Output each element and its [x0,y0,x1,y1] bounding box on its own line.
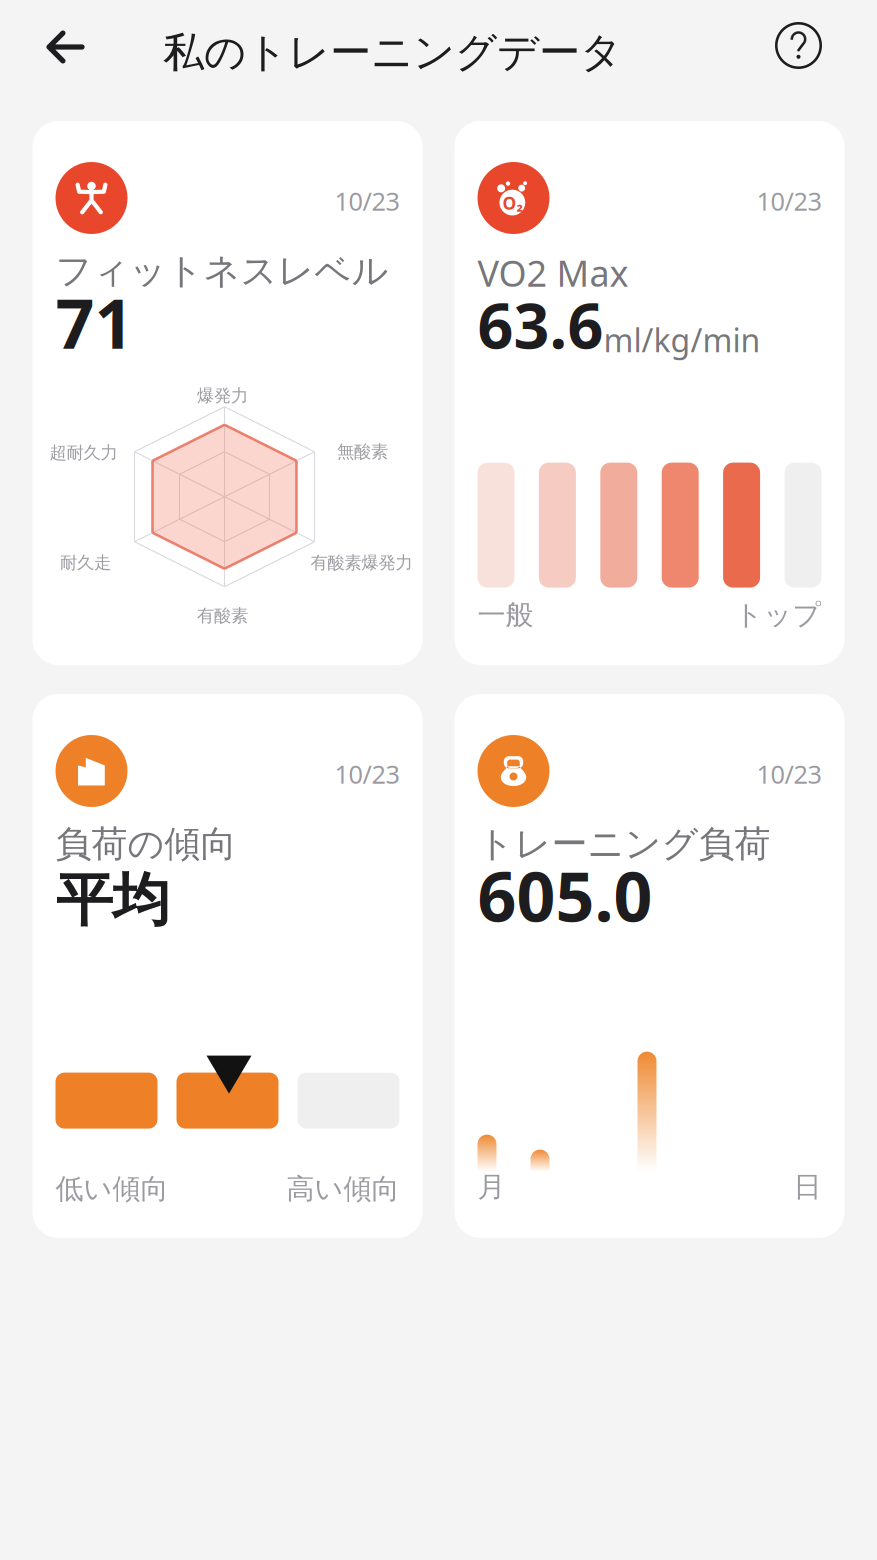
staticText: 10/23 [756,184,821,218]
staticText: トップ [734,598,821,632]
staticText: 爆発力 [197,385,248,406]
staticText: 63.6 [477,283,603,366]
staticText: トレーニング負荷 [477,822,770,866]
staticText: 有酸素爆発力 [310,552,412,573]
staticText: 高い傾向 [286,1172,399,1206]
staticText: 10/23 [334,184,399,218]
staticText: VO2 Max [477,249,628,297]
staticText: ml/kg/min [603,318,760,361]
staticText: 負荷の傾向 [55,822,236,866]
staticText: 平均 [55,865,169,936]
staticText: 日 [793,1170,821,1204]
staticText: フィットネスレベル [55,249,388,293]
staticText: 10/23 [756,757,821,791]
button[interactable]: Back [0,10,104,110]
staticText: 超耐久力 [49,442,117,463]
staticText: 私のトレーニングデータ [163,27,622,78]
staticText: 605.0 [477,850,652,940]
staticText: 耐久走 [60,552,111,573]
staticText: 月 [477,1170,505,1204]
staticText: O₂ [502,191,523,214]
staticText: 無酸素 [337,441,388,462]
staticText: 71 [55,277,133,367]
staticText: 一般 [477,598,533,632]
staticText: 低い傾向 [55,1172,168,1206]
staticText: 有酸素 [197,605,248,626]
button[interactable]: Help [753,10,877,111]
staticText: 10/23 [334,757,399,791]
